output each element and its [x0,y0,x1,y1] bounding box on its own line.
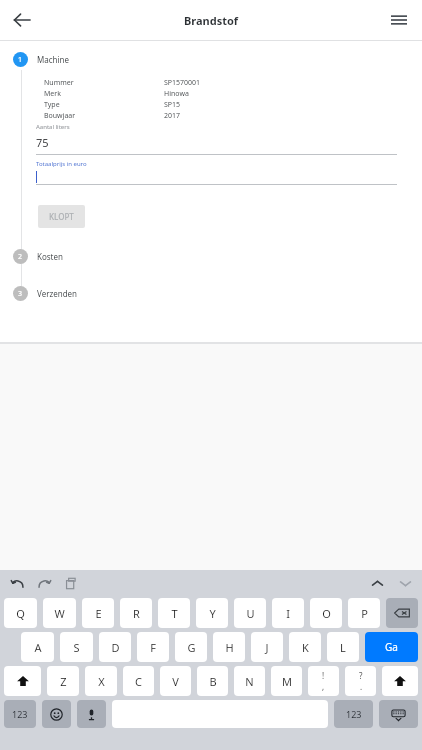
staticText: F [150,640,156,655]
staticText: Verzenden [37,288,78,299]
button[interactable]: F [137,632,169,662]
button[interactable]: Redo [35,574,53,592]
staticText: Nummer [44,78,164,88]
button[interactable]: O [310,598,342,628]
button[interactable]: X [85,666,117,696]
staticText: . [360,681,363,692]
staticText: K [302,640,309,655]
button[interactable]: Hide keyboard [379,700,418,728]
button[interactable]: ? [345,666,376,696]
staticText: 3 [18,289,23,299]
staticText: W [54,606,65,621]
staticText: Q [16,606,25,621]
button[interactable]: Shift [382,666,418,696]
button[interactable]: Emoji [42,700,71,728]
button[interactable]: 123 [4,700,36,728]
button[interactable]: 1 [0,52,422,67]
staticText: 2017 [164,111,181,121]
staticText: G [187,640,196,655]
staticText: 123 [346,708,362,720]
button[interactable]: Menu [382,3,416,37]
staticText: B [209,674,217,689]
staticText: 1 [18,55,23,65]
staticText: Merk [44,89,164,99]
button[interactable]: 123 [334,700,373,728]
staticText: E [95,606,102,621]
staticText: Z [60,674,67,689]
button[interactable]: A [21,632,54,662]
staticText: 75 [36,135,49,150]
button[interactable]: C [123,666,154,696]
button[interactable]: Y [196,598,228,628]
button[interactable]: H [213,632,245,662]
staticText: L [340,640,346,655]
button[interactable]: Next [396,574,414,592]
button[interactable]: Undo [8,574,26,592]
staticText: T [171,606,178,621]
staticText: S [73,640,80,655]
staticText: R [133,606,140,621]
button[interactable]: 2 [0,249,422,264]
button[interactable]: K [289,632,321,662]
staticText: Bouwjaar [44,111,164,121]
staticText: , [322,681,325,692]
staticText: A [34,640,42,655]
button[interactable]: KLOPT [38,205,85,228]
button[interactable]: ! [308,666,339,696]
button[interactable]: U [234,598,266,628]
button[interactable]: V [160,666,191,696]
staticText: Brandstof [184,13,239,28]
button[interactable]: Z [47,666,79,696]
button[interactable]: B [197,666,228,696]
staticText: Type [44,100,164,110]
staticText: O [322,606,331,621]
staticText: Totaalprijs in euro [36,160,87,168]
staticText: M [282,674,292,689]
button[interactable]: S [60,632,93,662]
button[interactable]: Back [4,2,40,38]
staticText: P [361,606,368,621]
button[interactable]: P [348,598,380,628]
staticText: U [246,606,255,621]
button[interactable]: Backspace [386,598,418,628]
staticText: 2 [18,252,23,262]
staticText: H [225,640,234,655]
staticText: C [135,674,142,689]
button[interactable]: I [272,598,304,628]
button[interactable]: D [99,632,131,662]
staticText: ? [359,670,363,681]
staticText: Kosten [37,251,63,262]
button[interactable]: G [175,632,207,662]
button[interactable]: Previous [368,574,386,592]
staticText: SP1570001 [164,78,201,88]
button[interactable]: Ga [365,632,418,662]
staticText: Machine [37,54,70,65]
staticText: I [286,606,290,621]
staticText: Aantal liters [36,123,70,131]
staticText: Y [209,606,216,621]
staticText: ! [322,670,325,681]
staticText: KLOPT [49,211,74,222]
button[interactable]: E [82,598,114,628]
button[interactable]: R [120,598,152,628]
staticText: Hinowa [164,89,189,99]
button[interactable]: T [158,598,190,628]
staticText: J [265,640,269,655]
button[interactable]: N [234,666,265,696]
button[interactable]: Shift [4,666,41,696]
button[interactable]: Q [4,598,37,628]
button[interactable]: L [327,632,359,662]
button[interactable]: Voice input [77,700,106,728]
button[interactable]: J [251,632,283,662]
staticText: D [111,640,120,655]
staticText: SP15 [164,100,181,110]
button[interactable]: W [43,598,76,628]
staticText: 123 [12,708,28,720]
staticText: V [172,674,179,689]
button[interactable]: 3 [0,286,422,301]
staticText: N [245,674,254,689]
staticText: X [98,674,105,689]
button[interactable]: Paste [62,574,80,592]
button[interactable]: M [271,666,302,696]
